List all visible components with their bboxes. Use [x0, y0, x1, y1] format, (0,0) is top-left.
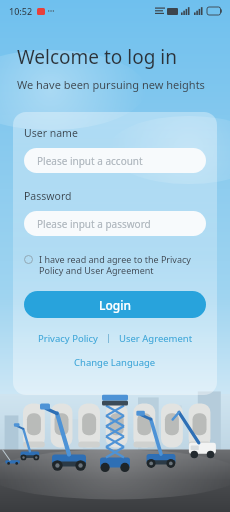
staticText: 10:52 [9, 5, 33, 17]
button[interactable]: User Agreement [116, 330, 196, 347]
button[interactable]: Change Language [70, 354, 160, 371]
staticText: Please input a password [37, 217, 151, 231]
staticText: We have been pursuing new heights [17, 77, 205, 92]
staticText: Login [99, 297, 131, 313]
staticText: Password [24, 189, 72, 203]
staticText: Please input a account [37, 154, 143, 168]
staticText: Privacy Policy [38, 332, 98, 345]
staticText: User name [24, 126, 78, 140]
button[interactable]: Login [24, 291, 206, 318]
staticText: Welcome to log in [17, 44, 177, 70]
button[interactable]: Privacy Policy [35, 330, 101, 347]
button[interactable]: I have read and agree to the Privacy Pol… [24, 253, 206, 277]
button[interactable]: Please input a password [24, 211, 206, 236]
staticText: Change Language [74, 356, 156, 369]
staticText: I have read and agree to the Privacy Pol… [39, 253, 206, 277]
button[interactable]: Please input a account [24, 148, 206, 173]
staticText: User Agreement [119, 332, 193, 345]
